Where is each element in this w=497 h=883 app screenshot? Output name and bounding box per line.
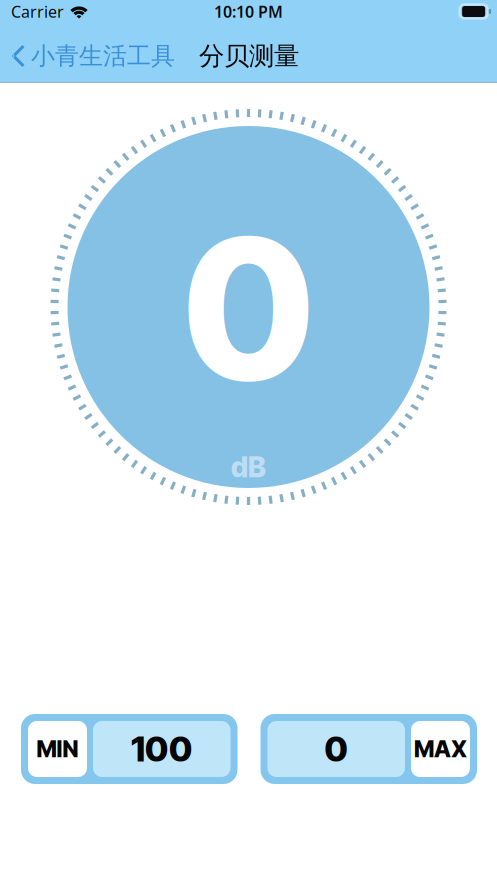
button[interactable]: 0 xyxy=(260,714,477,784)
button[interactable]: 小青生活工具 xyxy=(0,33,175,79)
staticText: 10:10 PM xyxy=(214,1,283,22)
staticText: 100 xyxy=(131,728,193,770)
staticText: 分贝测量 xyxy=(199,40,299,71)
staticText: 小青生活工具 xyxy=(31,41,175,71)
staticText: 0 xyxy=(182,191,315,427)
button[interactable]: MIN xyxy=(21,714,237,784)
staticText: MAX xyxy=(414,735,467,763)
staticText: Carrier xyxy=(11,1,64,22)
staticText: 0 xyxy=(324,728,348,770)
staticText: dB xyxy=(231,450,266,484)
staticText: MIN xyxy=(36,735,78,763)
